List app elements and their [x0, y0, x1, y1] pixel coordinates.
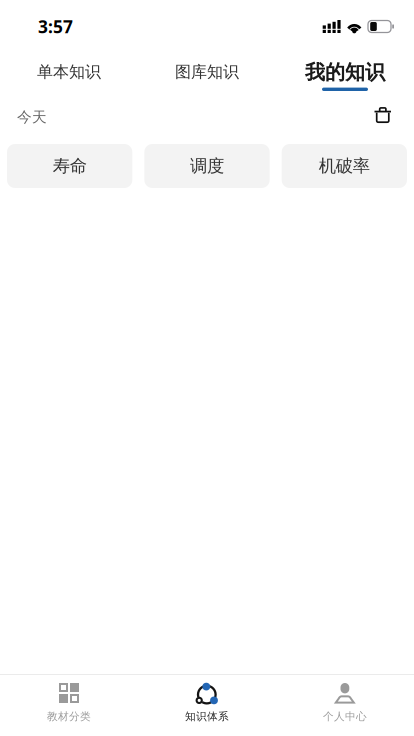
button[interactable]: 知识体系	[138, 675, 276, 736]
staticText: 今天	[17, 108, 47, 126]
button[interactable]: 图库知识	[138, 48, 276, 100]
button[interactable]: 机破率	[282, 144, 407, 188]
button[interactable]: 个人中心	[276, 675, 414, 736]
button[interactable]: 寿命	[7, 144, 132, 188]
staticText: 图库知识	[175, 62, 239, 82]
button[interactable]: 我的知识	[276, 48, 414, 100]
staticText: 3:57	[38, 15, 73, 38]
staticText: 个人中心	[323, 710, 367, 723]
staticText: 教材分类	[47, 710, 91, 723]
button[interactable]: 教材分类	[0, 675, 138, 736]
button[interactable]: 单本知识	[0, 48, 138, 100]
staticText: 我的知识	[305, 60, 385, 85]
staticText: 机破率	[319, 155, 370, 177]
button[interactable]: 调度	[144, 144, 270, 188]
button[interactable]: 删除	[368, 104, 397, 130]
staticText: 知识体系	[185, 710, 229, 723]
staticText: 寿命	[53, 155, 87, 177]
staticText: 单本知识	[37, 62, 101, 82]
staticText: 调度	[190, 155, 224, 177]
